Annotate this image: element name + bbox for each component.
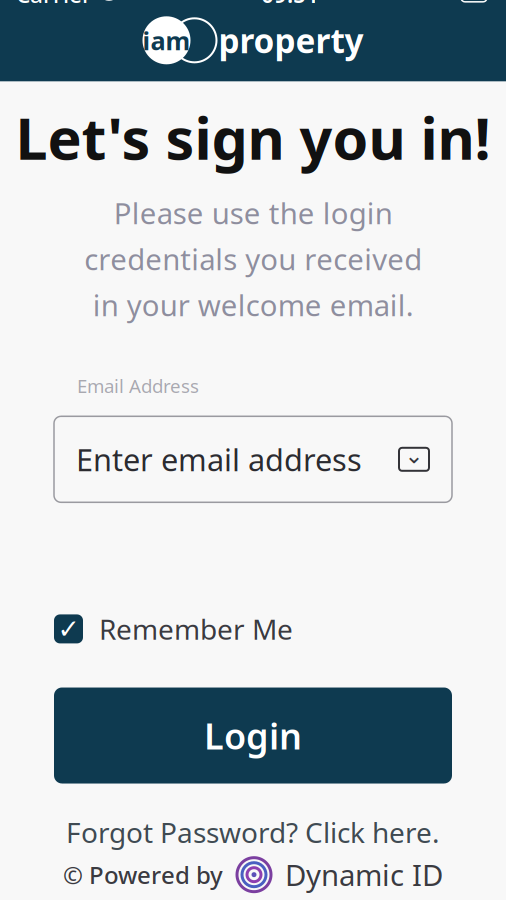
button[interactable]: Forgot Password? Click here. [58, 809, 448, 855]
staticText: 09:51 [261, 0, 319, 9]
staticText: Login [204, 712, 302, 759]
staticText: Dynamic ID [285, 855, 443, 894]
staticText: Email Address [77, 373, 199, 398]
staticText: © Powered by [63, 859, 223, 891]
button[interactable]: Login [54, 687, 452, 783]
staticText: Let's sign you in! [15, 99, 490, 175]
staticText: Please use the login credentials you rec… [84, 193, 422, 324]
staticText: iam [142, 23, 190, 57]
staticText: ⌄ [404, 442, 423, 468]
staticText: property [218, 18, 363, 62]
staticText: Forgot Password? Click here. [66, 813, 440, 851]
staticText: Enter email address [76, 439, 362, 480]
staticText: ✓ [57, 614, 79, 644]
staticText: Remember Me [99, 610, 293, 647]
staticText: Carrier [16, 0, 92, 9]
button[interactable]: ✓ [54, 606, 293, 651]
